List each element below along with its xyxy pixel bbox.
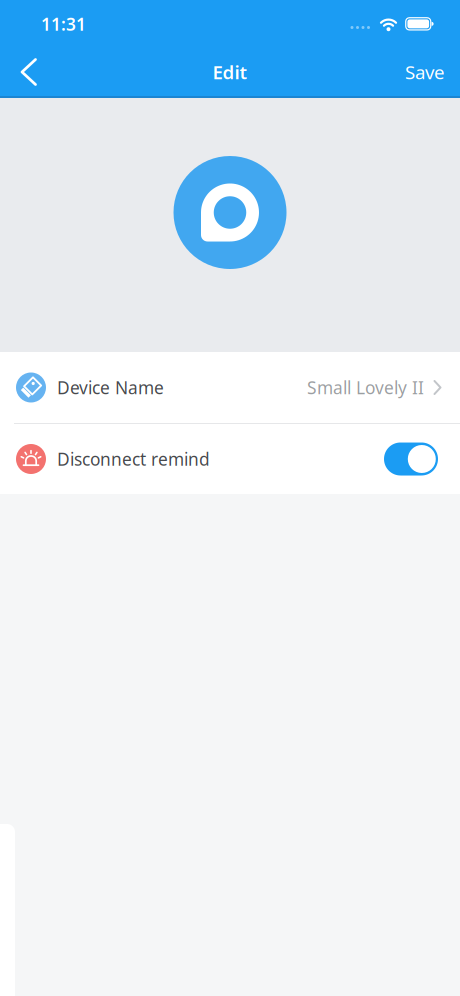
staticText: Small Lovely II bbox=[307, 376, 424, 399]
staticText: Device Name bbox=[57, 376, 164, 399]
button[interactable]: Save bbox=[405, 60, 460, 84]
staticText: 11:31 bbox=[41, 12, 86, 35]
staticText: Disconnect remind bbox=[57, 447, 210, 470]
button[interactable]: Back bbox=[0, 50, 46, 94]
staticText: Save bbox=[405, 60, 445, 84]
staticText: Edit bbox=[212, 60, 247, 84]
button[interactable]: Device Name bbox=[0, 352, 460, 423]
button[interactable]: Disconnect remind bbox=[384, 442, 438, 475]
